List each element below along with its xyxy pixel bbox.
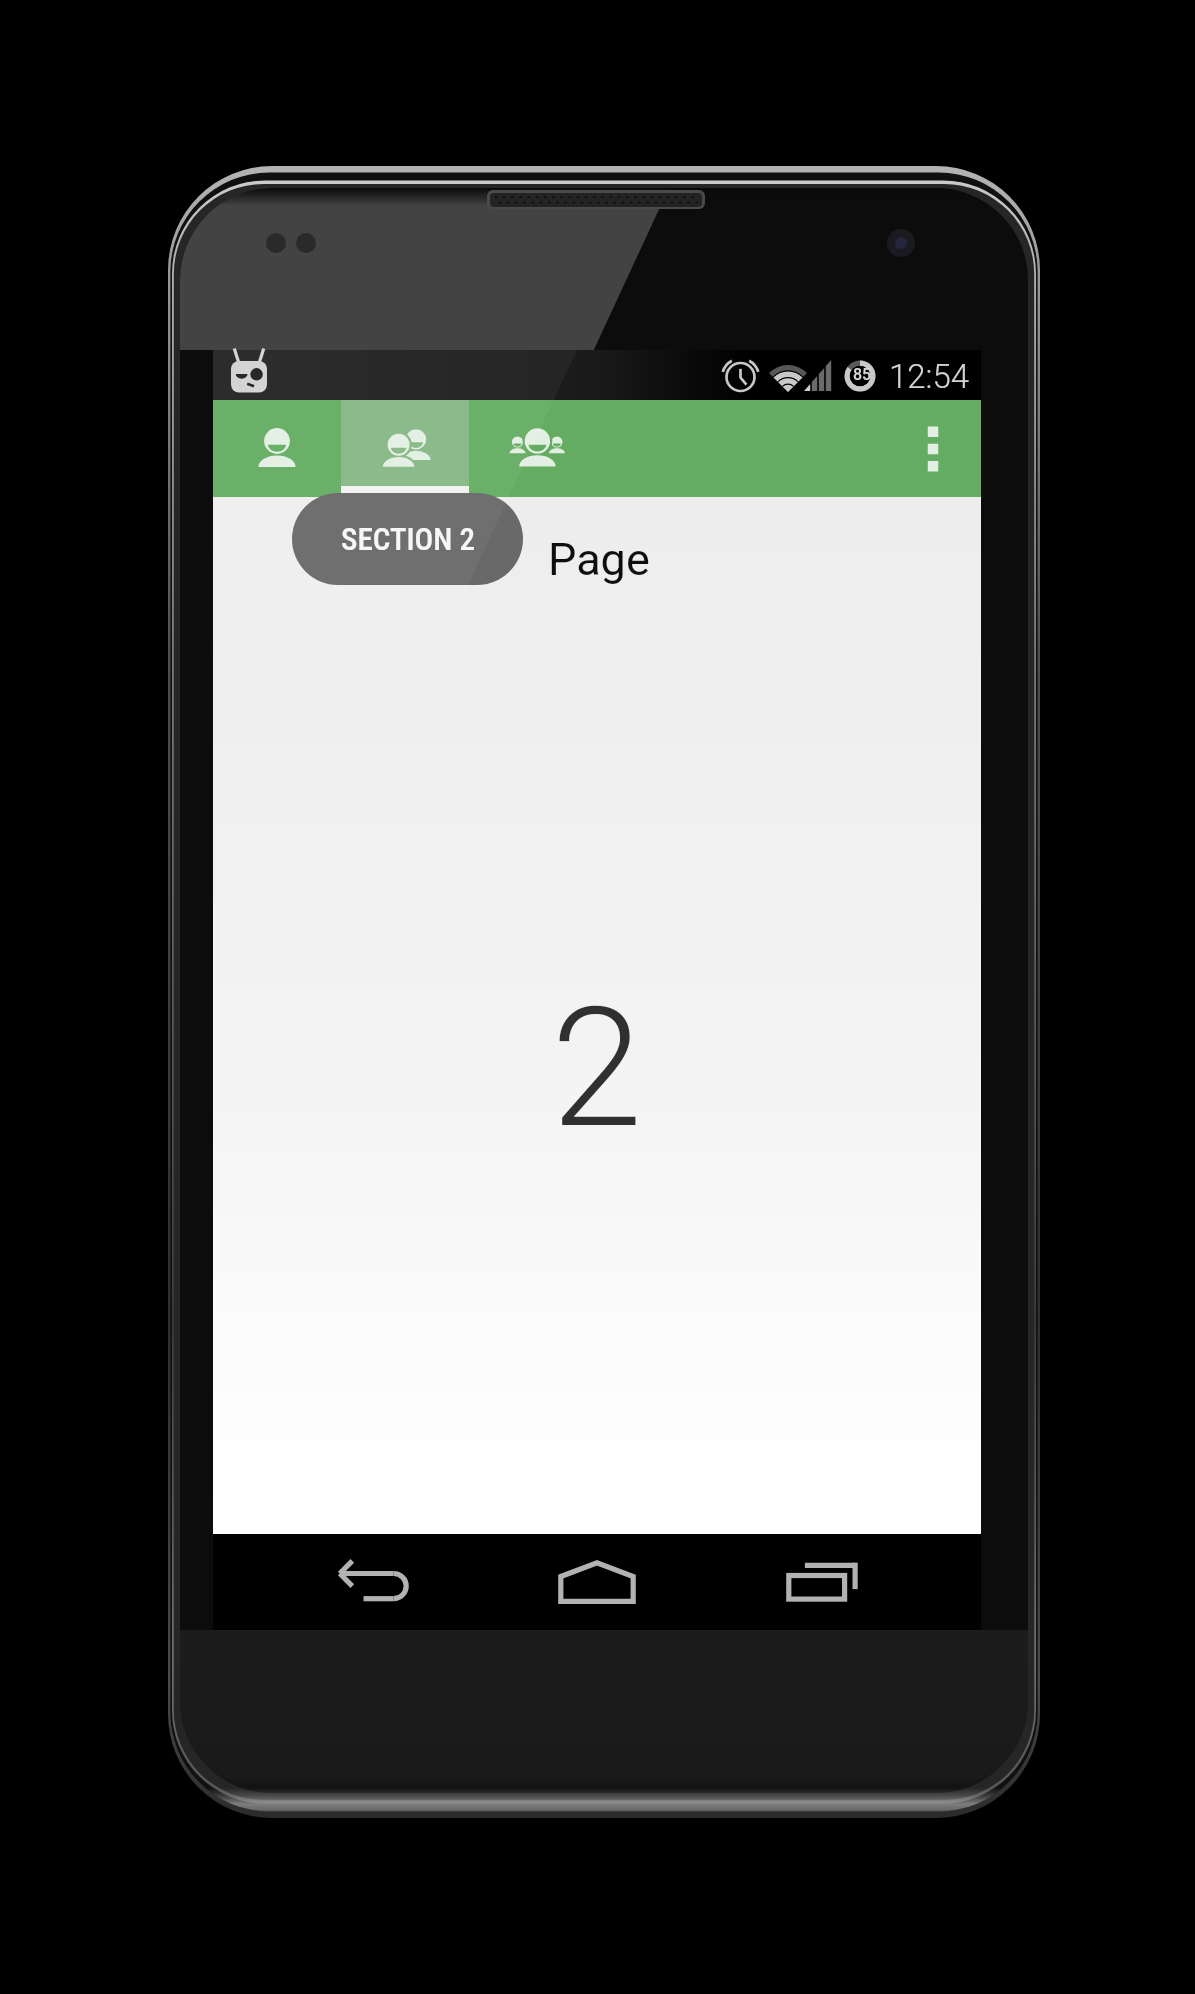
button[interactable]: Back (253, 1534, 493, 1630)
button[interactable]: Section 1 (213, 400, 341, 497)
button[interactable]: Home (493, 1534, 701, 1630)
button[interactable]: SECTION 2 (292, 493, 523, 585)
staticText: Page (548, 533, 650, 586)
staticText: SECTION 2 (341, 521, 475, 557)
button[interactable]: Section 3 (469, 400, 597, 497)
staticText: 85 (853, 365, 872, 384)
button[interactable]: Section 2 (341, 400, 469, 497)
button[interactable]: More options (885, 400, 981, 497)
staticText: 2 (551, 972, 643, 1165)
staticText: 12:54 (889, 357, 970, 396)
button[interactable]: Recent apps (701, 1534, 941, 1630)
